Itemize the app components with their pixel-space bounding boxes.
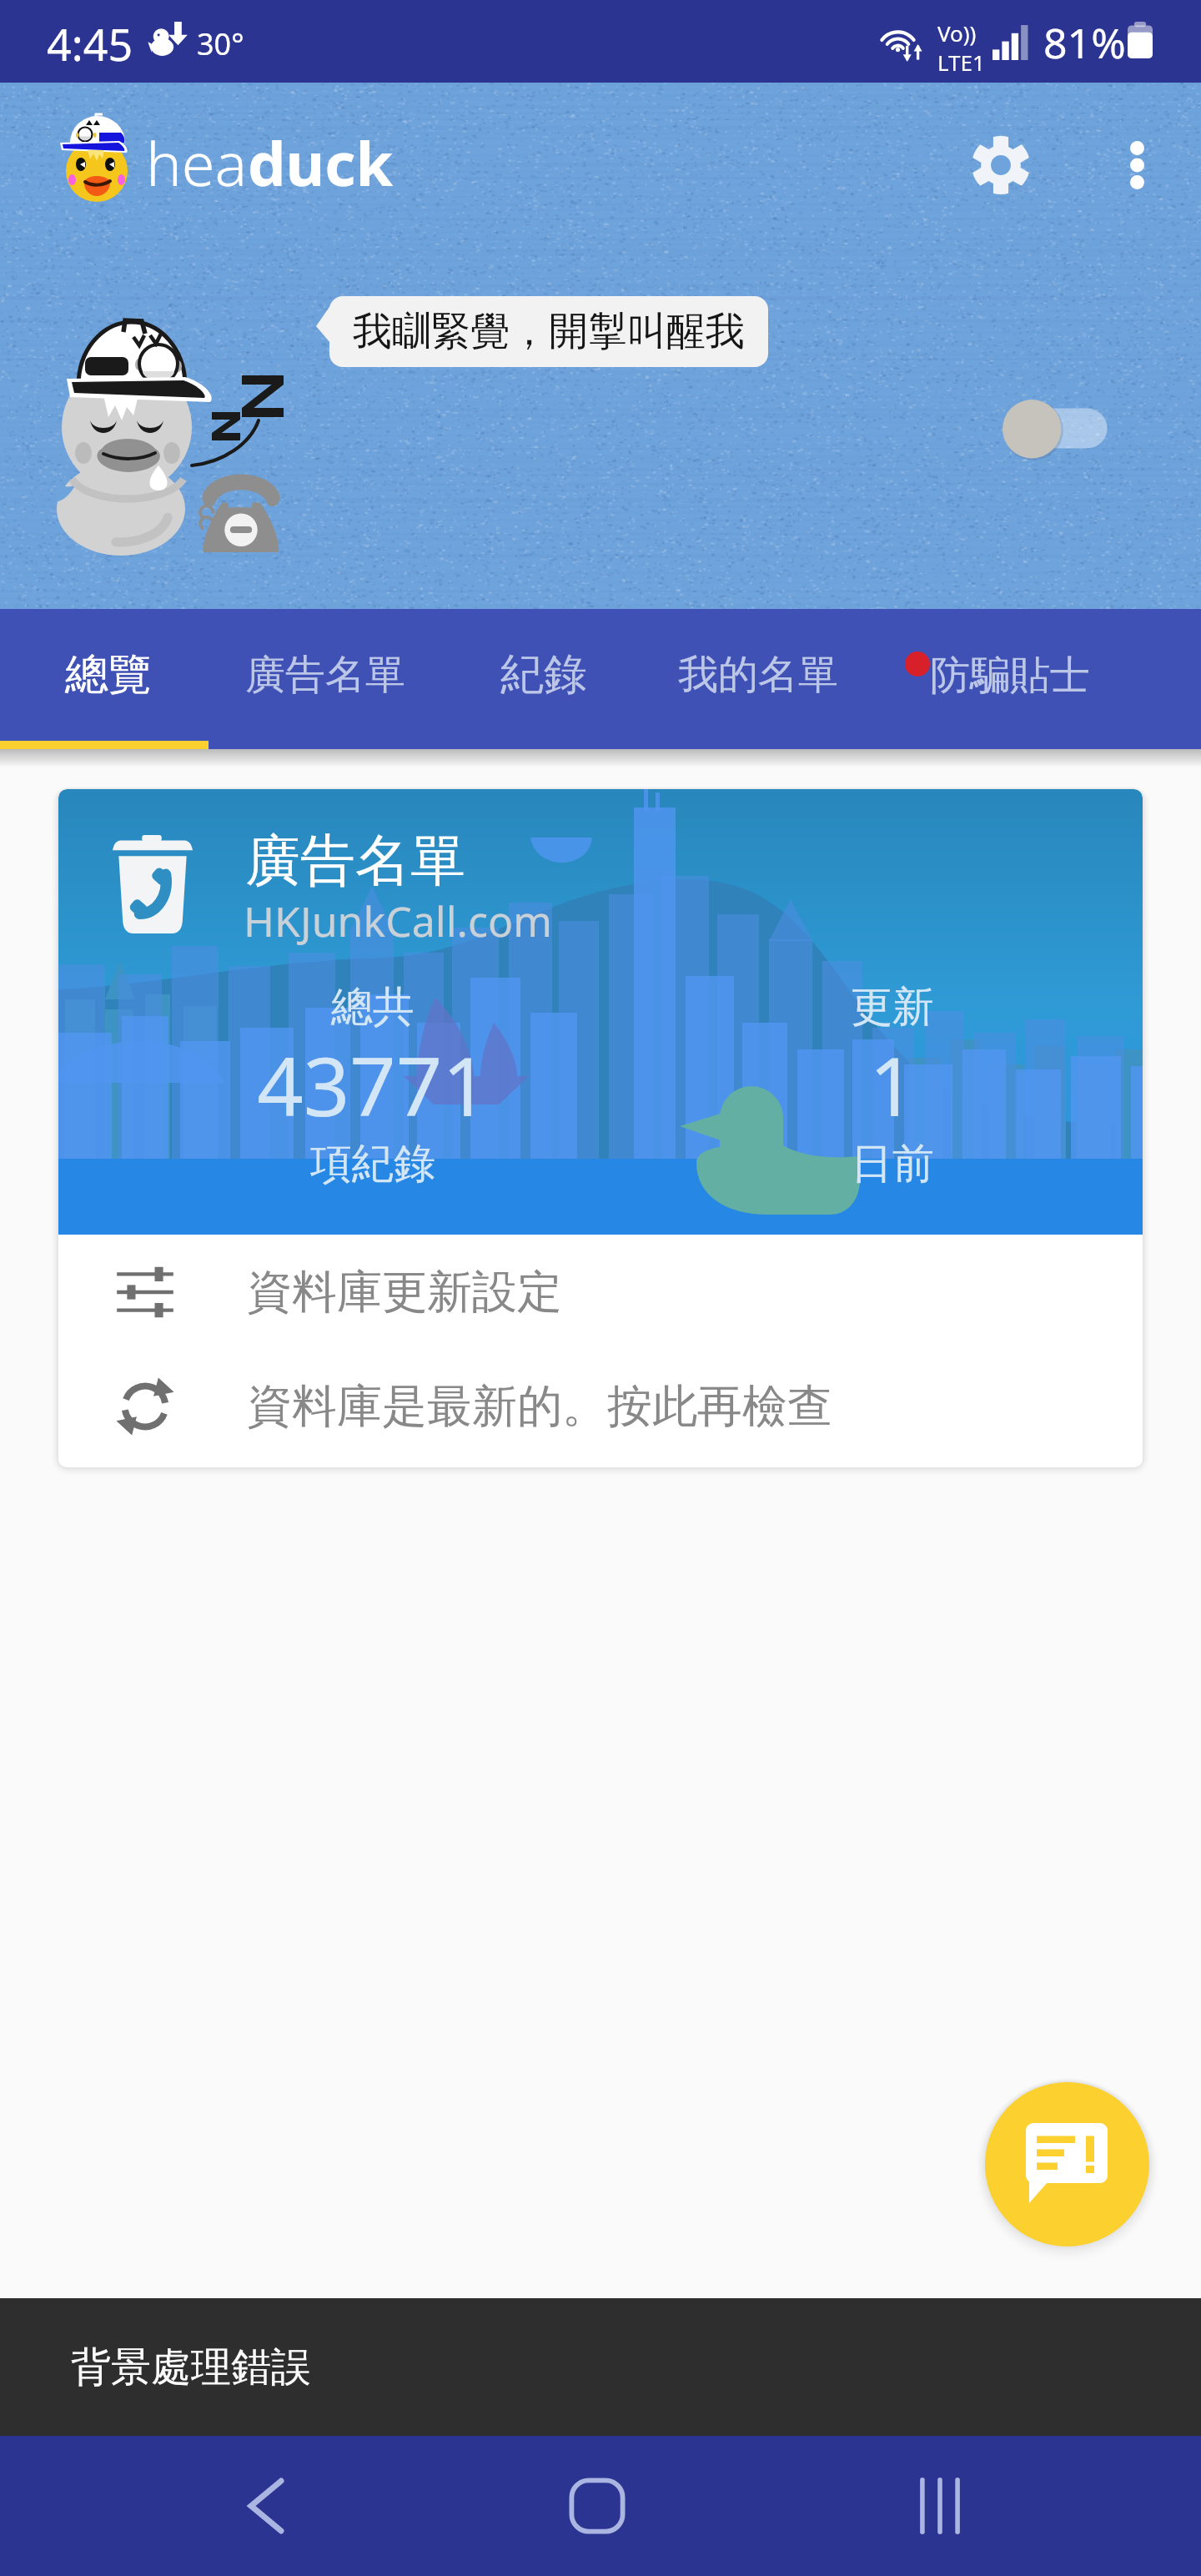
staticText: 背景處理錯誤 — [71, 2342, 311, 2392]
button[interactable]: 資料庫更新設定 — [58, 1235, 1143, 1349]
staticText: 資料庫是最新的。按此再檢查 — [247, 1378, 832, 1435]
staticText: 更新 — [726, 981, 1059, 1034]
button[interactable]: 廣告名單 — [220, 609, 430, 749]
staticText: 30° — [197, 23, 244, 64]
staticText: 防騙貼士 — [930, 651, 1090, 701]
staticText: 廣告名單 — [245, 826, 465, 895]
button[interactable]: 廣告名單 — [58, 789, 1143, 1235]
button[interactable]: More options — [1078, 107, 1195, 224]
button[interactable]: Back — [165, 2436, 365, 2576]
staticText: 紀錄 — [500, 647, 587, 702]
staticText: 43771 — [206, 1029, 540, 1140]
staticText: 1 — [726, 1029, 1059, 1140]
button[interactable]: Settings — [942, 107, 1059, 224]
staticText: 廣告名單 — [245, 650, 405, 700]
staticText: 81% — [1043, 14, 1126, 71]
button[interactable]: 我的名單 — [653, 609, 863, 749]
staticText: 總覽 — [65, 647, 152, 702]
button[interactable]: 防騙貼士 — [905, 609, 1113, 749]
staticText: 項紀錄 — [206, 1138, 540, 1190]
button[interactable]: Home — [497, 2436, 697, 2576]
button[interactable]: Sleep mode toggle — [1003, 400, 1153, 466]
staticText: 我瞓緊覺，開掣叫醒我 — [353, 307, 745, 356]
button[interactable]: Recent apps — [840, 2436, 1040, 2576]
staticText: LTE1 — [937, 48, 985, 77]
staticText: 我的名單 — [678, 650, 838, 700]
button[interactable]: 資料庫是最新的。按此再檢查 — [58, 1349, 1143, 1463]
staticText: 總共 — [206, 981, 540, 1034]
staticText: 資料庫更新設定 — [247, 1264, 562, 1321]
staticText: HKJunkCall.com — [244, 893, 552, 949]
staticText: 4:45 — [47, 14, 133, 73]
staticText: 日前 — [726, 1138, 1059, 1190]
staticText: duck — [248, 122, 394, 204]
button[interactable]: Send feedback — [985, 2082, 1149, 2246]
staticText: Vo)) — [937, 18, 977, 48]
button[interactable]: 紀錄 — [475, 609, 612, 749]
button[interactable]: 總覽 — [40, 609, 177, 749]
staticText: hea — [146, 122, 248, 204]
